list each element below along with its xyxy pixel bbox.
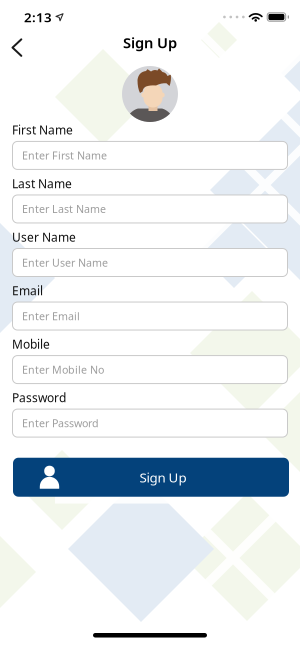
staticText: Sign Up xyxy=(123,33,177,52)
staticText: Last Name xyxy=(12,175,72,191)
button[interactable]: Password text field xyxy=(12,409,288,438)
button[interactable]: Back xyxy=(0,28,31,60)
staticText: Enter User Name xyxy=(22,255,108,270)
button[interactable]: User Name text field xyxy=(12,248,288,277)
staticText: Password xyxy=(12,390,66,406)
staticText: Enter Last Name xyxy=(22,202,106,216)
button[interactable]: First Name text field xyxy=(12,141,288,170)
button[interactable]: Email text field xyxy=(12,301,288,330)
staticText: Mobile xyxy=(12,336,50,352)
staticText: 2:13 xyxy=(24,8,52,26)
staticText: Enter First Name xyxy=(22,148,107,163)
staticText: Enter Email xyxy=(22,309,80,323)
staticText: Enter Mobile No xyxy=(22,362,104,377)
staticText: Sign Up xyxy=(139,468,186,486)
staticText: Email xyxy=(12,283,43,298)
button[interactable]: Sign Up xyxy=(0,458,300,497)
button[interactable]: Mobile text field xyxy=(12,355,288,384)
staticText: Enter Password xyxy=(22,416,99,430)
staticText: User Name xyxy=(12,229,76,245)
button[interactable]: Last Name text field xyxy=(12,194,288,223)
staticText: First Name xyxy=(12,122,73,138)
